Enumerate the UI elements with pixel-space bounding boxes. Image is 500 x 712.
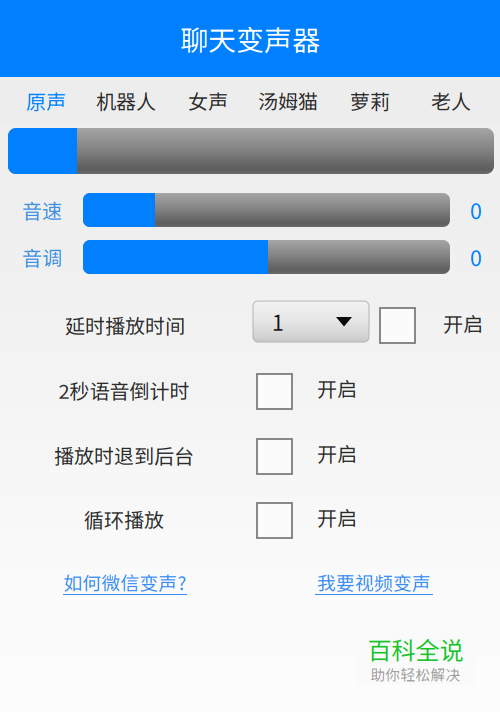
button[interactable]: 机器人 [96,77,156,124]
button[interactable]: 1 [253,301,369,342]
button[interactable]: 开启 [257,361,357,419]
staticText: 音调 [22,242,62,271]
button[interactable]: 开启 [380,296,484,354]
staticText: 开启 [317,438,357,467]
staticText: 开启 [317,373,357,402]
staticText: 我要视频变声 [317,568,431,595]
button[interactable]: 老人 [431,77,471,124]
staticText: 音速 [22,195,62,224]
staticText: 原声 [26,86,66,115]
staticText: 萝莉 [350,86,390,115]
staticText: 汤姆猫 [258,86,318,115]
button[interactable]: 女声 [188,77,228,124]
button[interactable]: 开启 [257,490,357,548]
staticText: 2秒语音倒计时 [58,375,189,404]
button[interactable]: 开启 [257,426,357,484]
button[interactable]: 汤姆猫 [258,77,318,124]
staticText: 机器人 [96,86,156,115]
staticText: 女声 [188,86,228,115]
button[interactable]: 我要视频变声 [315,570,433,596]
staticText: 老人 [431,86,471,115]
button[interactable]: 如何微信变声? [63,570,187,596]
staticText: 延时播放时间 [65,310,185,339]
staticText: 聊天变声器 [180,18,320,59]
staticText: 0 [470,242,482,272]
staticText: 0 [470,195,482,225]
staticText: 百科全说 [367,632,463,666]
staticText: 循环播放 [84,504,164,533]
staticText: 播放时退到后台 [54,440,194,469]
staticText: 开启 [443,308,483,337]
button[interactable]: 原声 [26,77,66,124]
button[interactable]: 萝莉 [350,77,390,124]
staticText: 开启 [317,502,357,531]
staticText: 助你轻松解决 [370,663,460,685]
staticText: 1 [272,306,284,337]
staticText: 如何微信变声? [63,568,186,595]
